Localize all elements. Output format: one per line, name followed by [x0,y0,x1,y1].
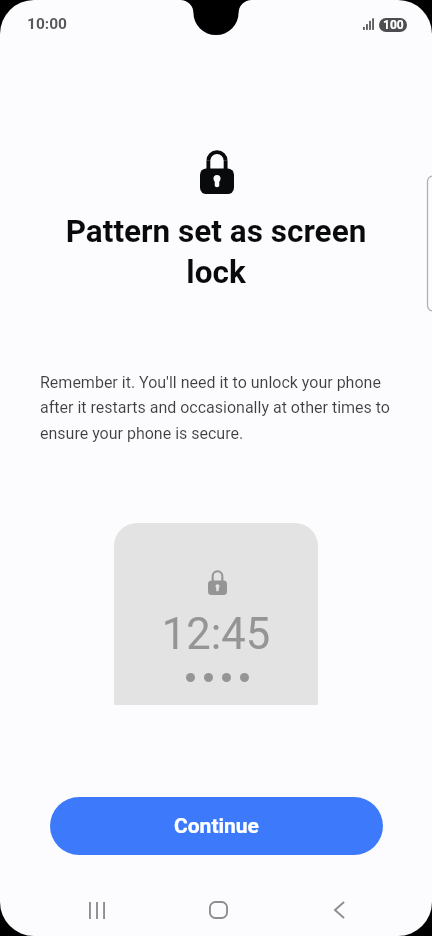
staticText: 100 [383,18,404,32]
button[interactable]: Home [158,882,279,936]
staticText: 10:00 [27,15,67,33]
button[interactable]: Recent apps [36,882,158,936]
button[interactable]: Continue [50,797,383,855]
button[interactable]: Back [279,882,400,936]
staticText: Remember it. You'll need it to unlock yo… [40,373,394,443]
staticText: Pattern set as screen lock [56,213,376,291]
staticText: Continue [174,814,259,839]
staticText: 12:45 [114,609,318,660]
